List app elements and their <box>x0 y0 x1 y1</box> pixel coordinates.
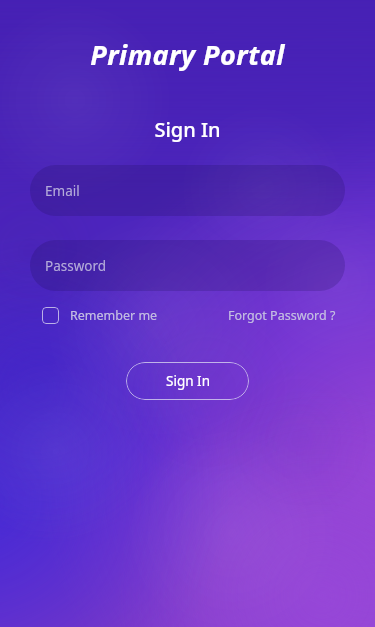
staticText: Sign In <box>154 116 221 143</box>
button[interactable]: Password <box>30 240 345 291</box>
staticText: Forgot Password ? <box>228 307 336 324</box>
button[interactable]: Email <box>30 165 345 216</box>
button[interactable]: Forgot Password ? <box>228 307 336 324</box>
staticText: Primary Portal <box>90 36 285 73</box>
staticText: Email <box>45 182 80 200</box>
staticText: Password <box>45 257 107 275</box>
staticText: Remember me <box>70 307 158 324</box>
button[interactable]: Remember me <box>42 307 158 324</box>
button[interactable]: Sign In <box>126 362 249 400</box>
staticText: Sign In <box>166 372 210 390</box>
